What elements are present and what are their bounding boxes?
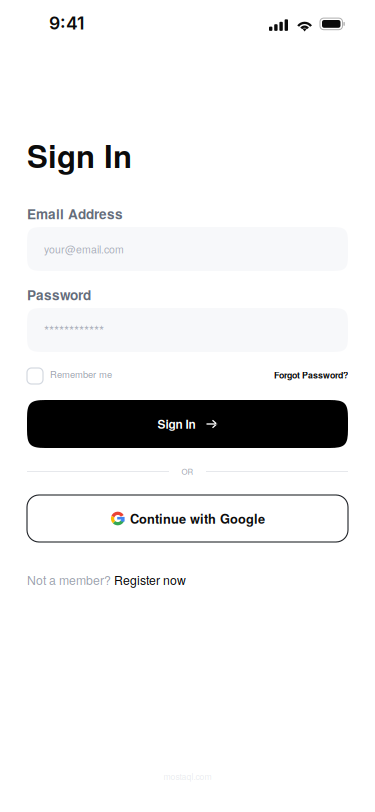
staticText: Password	[27, 285, 91, 304]
staticText: Register now	[114, 571, 186, 589]
staticText: Not a member?	[27, 571, 114, 589]
button[interactable]: Continue with Google	[27, 495, 348, 542]
button[interactable]: Register now	[114, 571, 186, 589]
staticText: your@email.com	[44, 241, 124, 257]
staticText: ************	[44, 320, 104, 339]
staticText: Sign In	[157, 415, 195, 432]
button[interactable]: Sign In	[27, 400, 348, 448]
staticText: Email Address	[27, 204, 123, 223]
button[interactable]: Remember me	[27, 368, 112, 384]
staticText: 9:41	[49, 12, 84, 34]
staticText: Forgot Password?	[274, 369, 348, 381]
staticText: mostaql.com	[163, 770, 211, 782]
staticText: OR	[181, 466, 193, 477]
staticText: Continue with Google	[130, 509, 265, 528]
staticText: Sign In	[27, 133, 132, 177]
button[interactable]: Forgot Password?	[274, 368, 348, 384]
staticText: Remember me	[50, 367, 112, 381]
